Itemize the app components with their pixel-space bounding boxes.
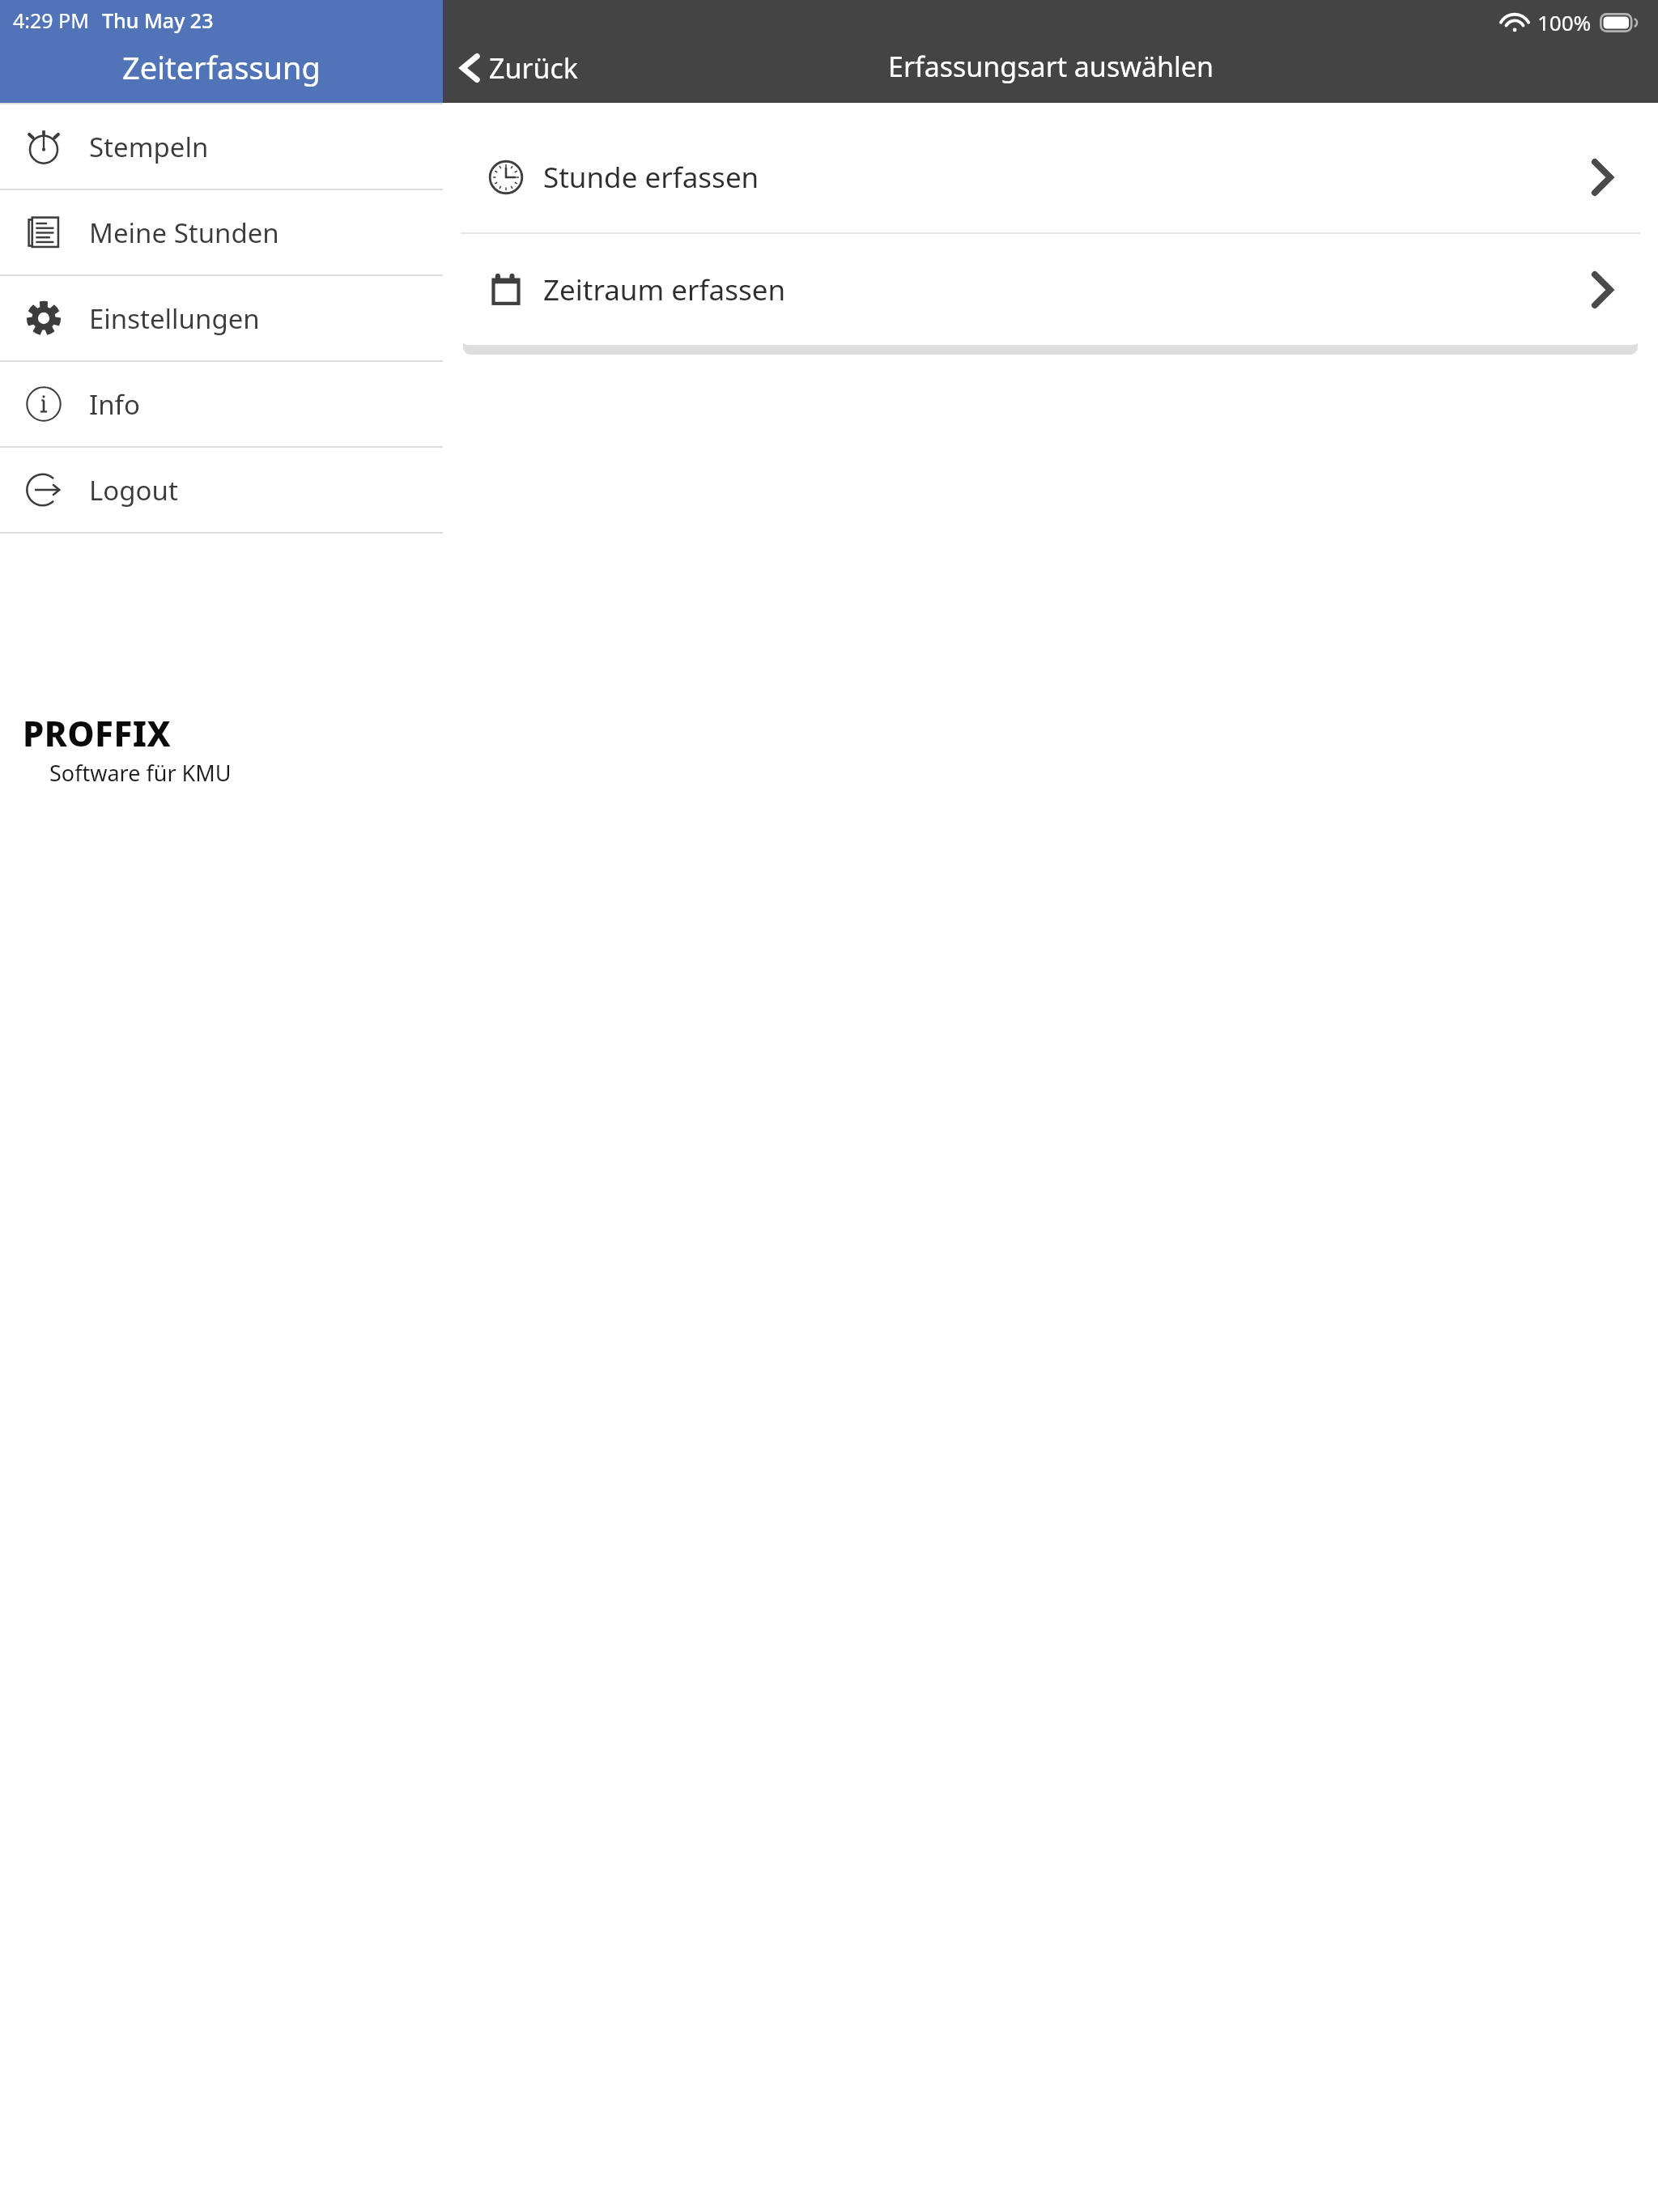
other: Info (25, 385, 62, 423)
button[interactable]: Meine Stunden (0, 190, 443, 274)
staticText: Einstellungen (89, 300, 260, 337)
other: Meine Stunden (25, 214, 62, 251)
staticText: Stempeln (89, 129, 209, 165)
staticText: Logout (89, 472, 178, 508)
staticText: Thu May 23 (102, 6, 214, 34)
other: Akku (1600, 13, 1637, 32)
staticText: 4:29 PM (13, 6, 89, 34)
button[interactable]: Zurück (443, 33, 589, 103)
other: Einstellungen (25, 300, 62, 337)
other: Zeitraum erfassen (488, 272, 524, 308)
button[interactable]: Stempeln (0, 104, 443, 189)
other: Stunde erfassen (488, 160, 524, 195)
staticText: Zeiterfassung (122, 46, 321, 88)
staticText: Stunde erfassen (543, 158, 759, 197)
other: WLAN (1502, 10, 1528, 36)
other: Stempeln (25, 128, 62, 165)
staticText: PROFFIX (23, 710, 172, 756)
button[interactable]: Zeitraum erfassen (461, 234, 1640, 345)
staticText: Erfassungsart auswählen (888, 48, 1214, 85)
staticText: Meine Stunden (89, 215, 279, 251)
other: Logout (25, 471, 62, 508)
button[interactable]: Info (0, 362, 443, 446)
staticText: 100% (1537, 8, 1592, 36)
staticText: Software für KMU (49, 758, 232, 788)
staticText: Info (89, 386, 140, 423)
staticText: Zurück (489, 49, 578, 87)
button[interactable]: Einstellungen (0, 276, 443, 360)
button[interactable]: Stunde erfassen (461, 121, 1640, 232)
staticText: Zeitraum erfassen (543, 270, 786, 309)
button[interactable]: Logout (0, 448, 443, 532)
